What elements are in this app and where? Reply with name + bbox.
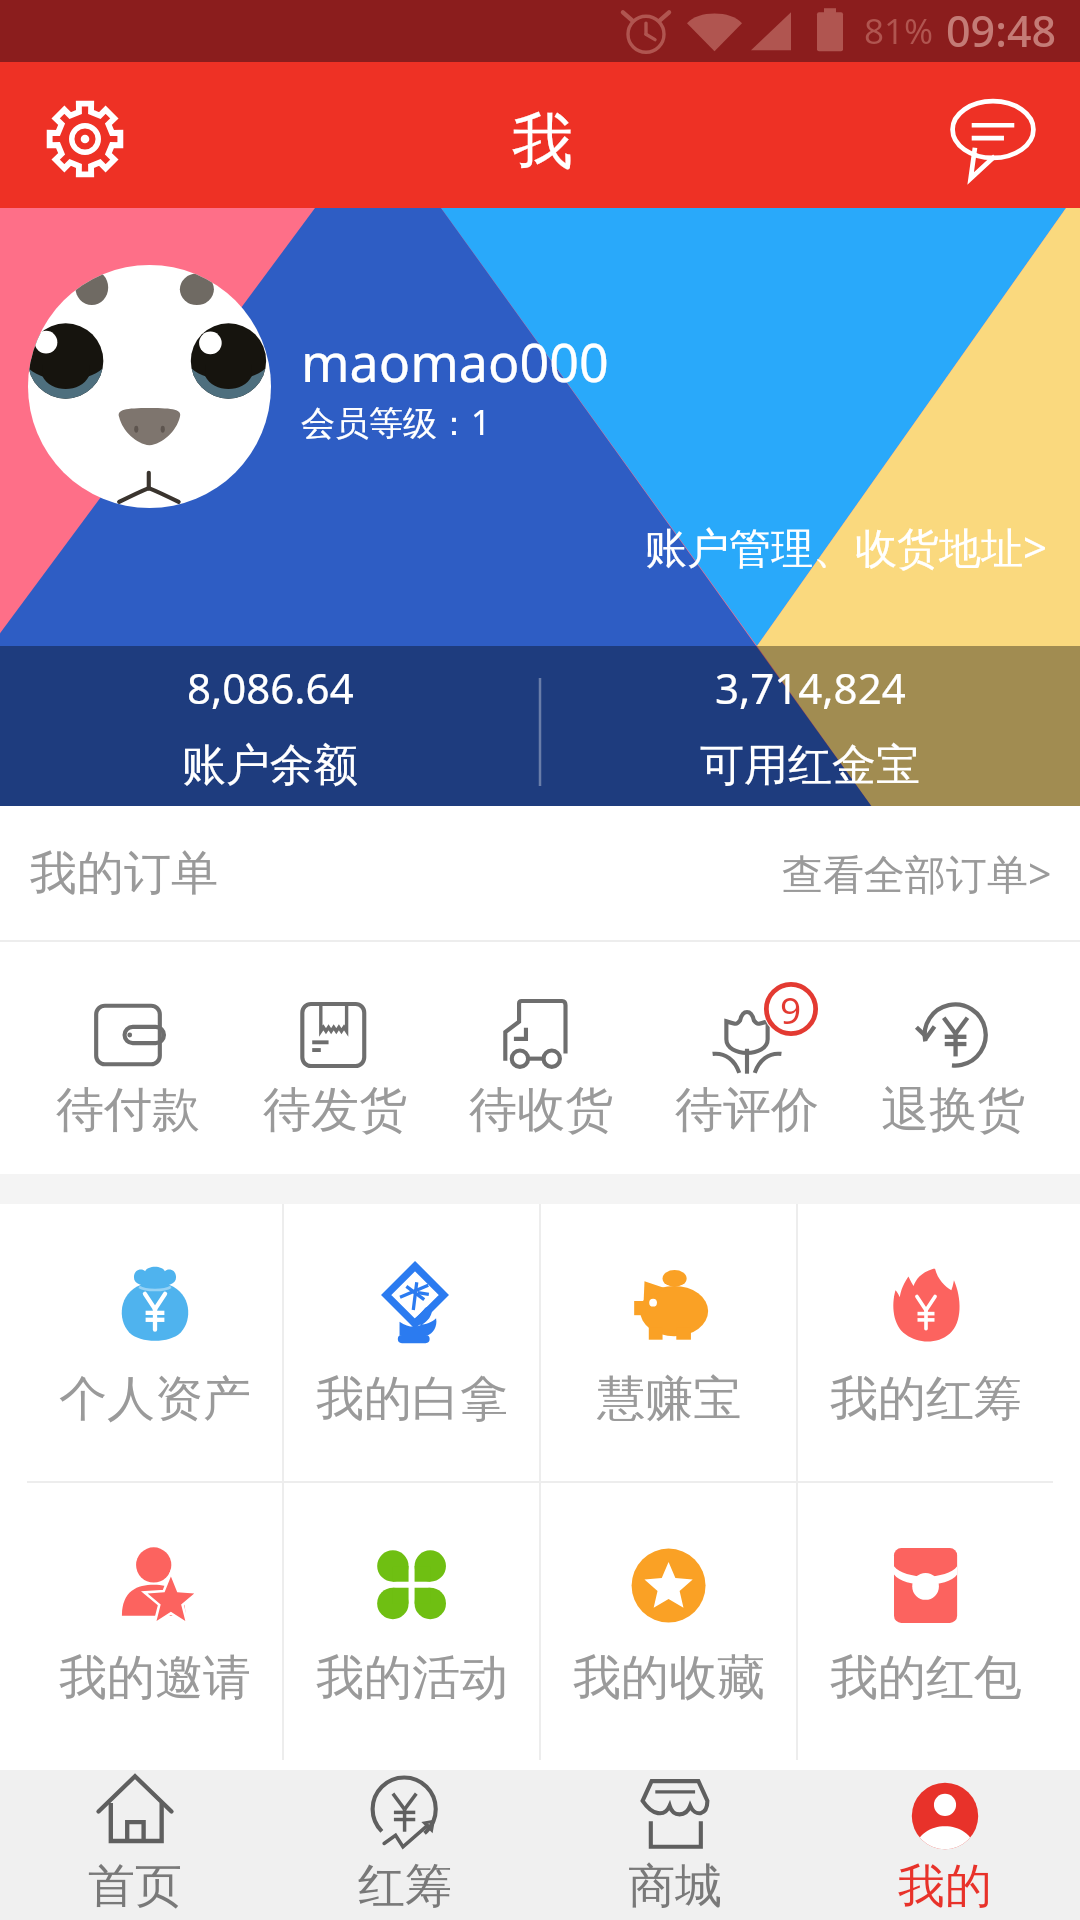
button[interactable]: 我的 — [810, 1770, 1080, 1920]
button[interactable]: 我的红包 — [798, 1483, 1053, 1760]
staticText: 我的白拿 — [316, 1369, 508, 1429]
staticText: 商城 — [628, 1857, 722, 1916]
staticText: 我的红筹 — [830, 1369, 1022, 1429]
staticText: 会员等级：1 — [301, 399, 491, 445]
staticText: 待发货 — [263, 1080, 407, 1140]
button[interactable]: 账户管理、收货地址> — [613, 508, 1080, 585]
staticText: 我的订单 — [30, 844, 218, 903]
button[interactable]: 首页 — [0, 1770, 270, 1920]
staticText: 红筹 — [358, 1857, 452, 1916]
button[interactable]: 退换货 — [850, 942, 1056, 1174]
staticText: maomao000 — [301, 326, 609, 397]
staticText: 我的收藏 — [573, 1648, 765, 1708]
staticText: 账户管理、收货地址> — [645, 518, 1048, 575]
staticText: 我 — [512, 103, 573, 180]
staticText: 查看全部订单> — [782, 845, 1052, 901]
button[interactable]: 我的邀请 — [27, 1483, 282, 1760]
staticText: 可用红金宝 — [700, 738, 920, 793]
button[interactable]: Settings — [37, 91, 133, 187]
staticText: 09:48 — [946, 1, 1057, 60]
button[interactable]: 红筹 — [270, 1770, 540, 1920]
button[interactable]: 待收货 — [438, 942, 644, 1174]
button[interactable]: 待付款 — [24, 942, 231, 1174]
staticText: 慧赚宝 — [597, 1369, 741, 1429]
button[interactable]: 慧赚宝 — [541, 1204, 796, 1481]
staticText: 退换货 — [881, 1080, 1025, 1140]
button[interactable]: 我的白拿 — [284, 1204, 539, 1481]
staticText: 我的活动 — [316, 1648, 508, 1708]
staticText: 我的 — [898, 1857, 992, 1916]
button[interactable]: 我的红筹 — [798, 1204, 1053, 1481]
button[interactable]: 我的订单 — [0, 806, 1080, 940]
staticText: 我的红包 — [830, 1648, 1022, 1708]
staticText: 待付款 — [56, 1080, 200, 1140]
button[interactable]: 我的活动 — [284, 1483, 539, 1760]
staticText: 8,086.64 — [187, 659, 354, 716]
staticText: 9 — [780, 984, 802, 1034]
staticText: 账户余额 — [182, 738, 358, 793]
button[interactable]: 待发货 — [231, 942, 438, 1174]
staticText: 3,714,824 — [715, 659, 906, 716]
button[interactable]: 商城 — [540, 1770, 810, 1920]
staticText: 个人资产 — [59, 1369, 251, 1429]
staticText: 我的邀请 — [59, 1648, 251, 1708]
staticText: 81% — [864, 7, 934, 55]
button[interactable]: 个人资产 — [27, 1204, 282, 1481]
button[interactable]: 9 — [644, 942, 850, 1174]
button[interactable]: Messages — [945, 91, 1041, 187]
staticText: 待收货 — [469, 1080, 613, 1140]
staticText: 待评价 — [675, 1080, 819, 1140]
button[interactable]: 我的收藏 — [541, 1483, 796, 1760]
staticText: 首页 — [88, 1857, 182, 1916]
button[interactable]: Avatar — [28, 265, 271, 508]
button[interactable]: 8,086.64 — [0, 646, 540, 806]
button[interactable]: 3,714,824 — [540, 646, 1080, 806]
